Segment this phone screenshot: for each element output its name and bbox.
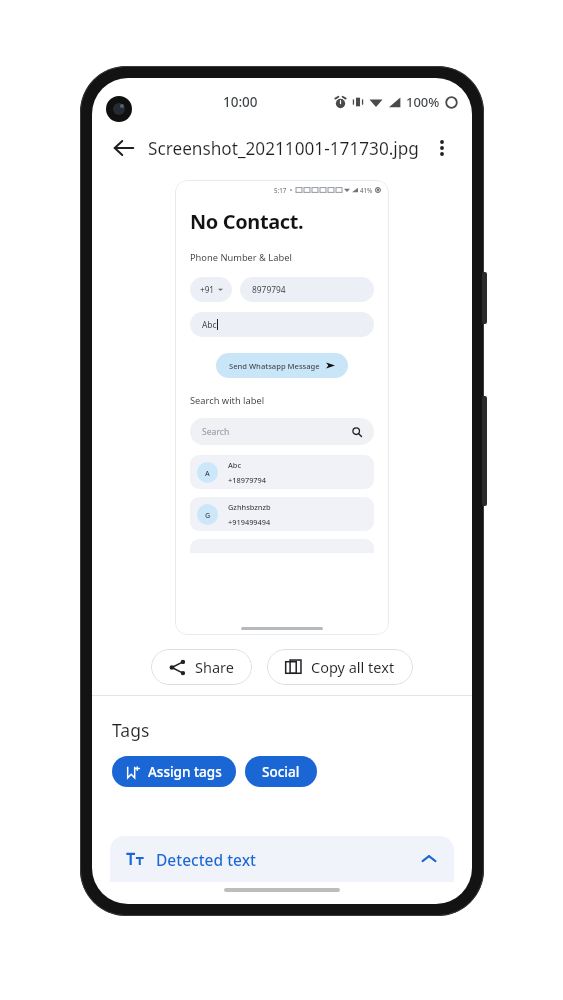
staticText: +18979794: [228, 475, 267, 485]
staticText: Detected text: [156, 849, 420, 870]
staticText: Search: [202, 426, 352, 438]
button[interactable]: 8979794: [240, 277, 374, 302]
staticText: +91: [200, 284, 215, 295]
staticText: +919499494: [228, 517, 271, 527]
button[interactable]: A: [190, 455, 374, 489]
button[interactable]: Assign tags: [112, 756, 236, 787]
button[interactable]: Copy all text: [267, 649, 413, 685]
staticText: Copy all text: [311, 657, 395, 677]
staticText: A: [205, 468, 210, 478]
staticText: Abc: [228, 460, 242, 470]
staticText: 41%: [360, 186, 373, 194]
staticText: 10:00: [223, 93, 258, 111]
button[interactable]: Social: [245, 756, 317, 787]
button[interactable]: Detected text: [110, 836, 454, 882]
button[interactable]: +91: [190, 277, 232, 302]
button[interactable]: Back: [104, 128, 144, 168]
button[interactable]: Abc: [190, 312, 374, 337]
staticText: Abc: [202, 319, 217, 330]
staticText: Phone Number & Label: [190, 251, 292, 264]
button[interactable]: Send Whatsapp Message: [216, 353, 348, 378]
staticText: 8979794: [252, 284, 286, 295]
staticText: Gzhhsbznzb: [228, 502, 271, 512]
staticText: Screenshot_20211001-171730.jpg: [148, 137, 422, 160]
button[interactable]: G: [190, 497, 374, 531]
staticText: Assign tags: [148, 763, 222, 781]
staticText: Tags: [112, 718, 150, 742]
staticText: Send Whatsapp Message: [229, 361, 320, 371]
staticText: Share: [195, 657, 234, 677]
staticText: No Contact.: [190, 208, 304, 235]
staticText: G: [205, 510, 211, 520]
staticText: Social: [262, 763, 300, 781]
staticText: Search with label: [190, 394, 265, 407]
button[interactable]: More options: [422, 128, 462, 168]
button[interactable]: 5:17: [175, 180, 389, 635]
button[interactable]: Share: [151, 649, 252, 685]
staticText: 5:17: [274, 186, 287, 194]
staticText: 100%: [406, 93, 440, 111]
button[interactable]: Search: [190, 418, 374, 445]
